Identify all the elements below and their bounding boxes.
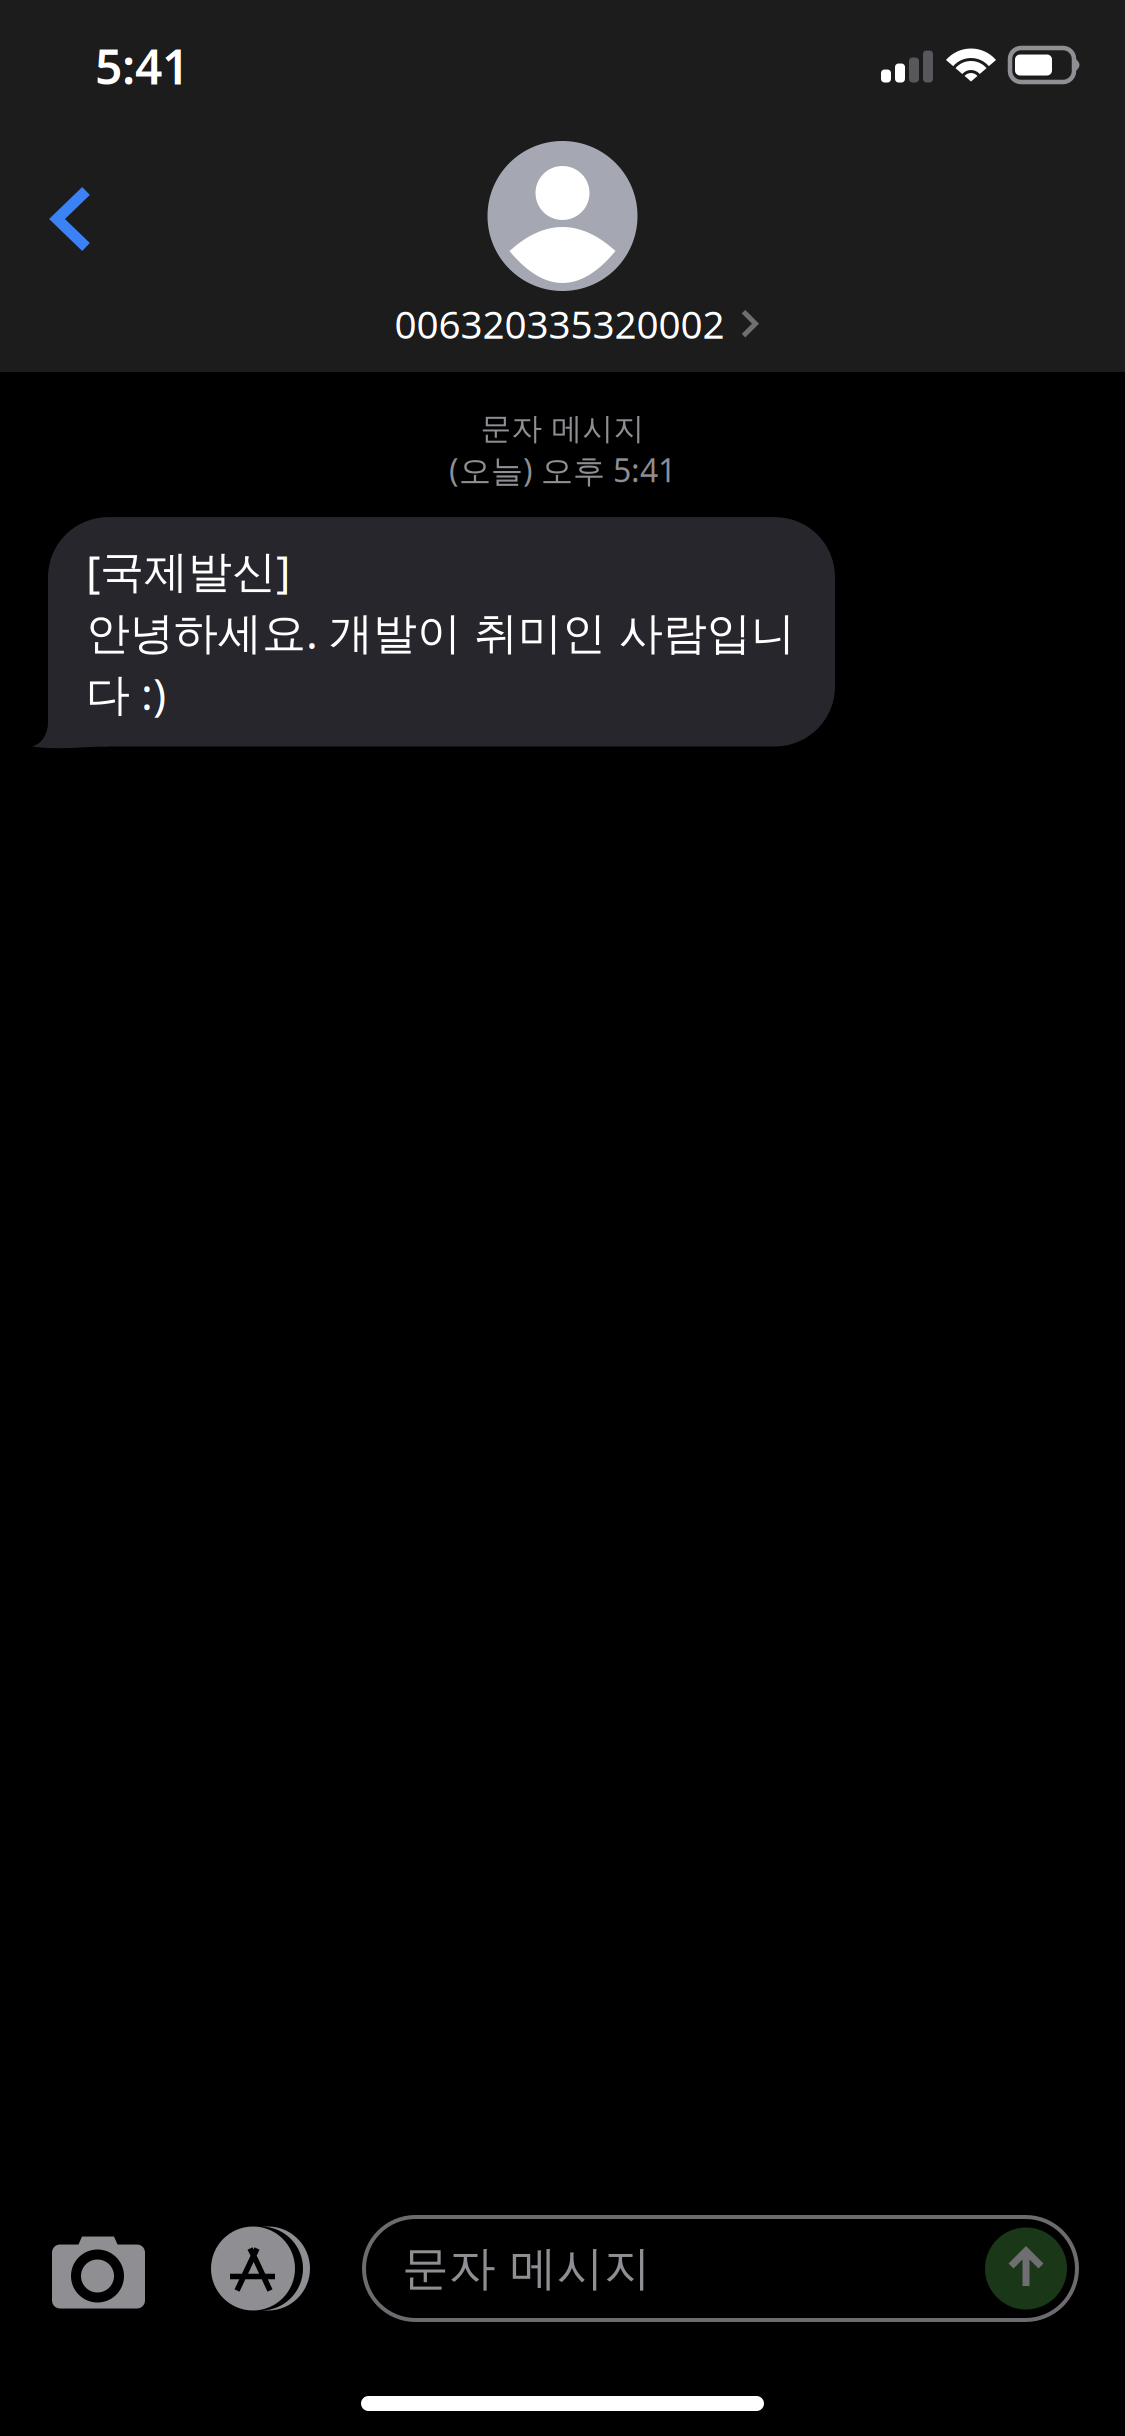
button[interactable]: 006320335320002 bbox=[366, 292, 758, 355]
staticText: 문자 메시지 bbox=[480, 410, 644, 448]
staticText: 006320335320002 bbox=[394, 298, 724, 349]
staticText: 5:41 bbox=[95, 34, 189, 98]
staticText: [국제발신] 안녕하세요. 개발이 취미인 사람입니 다 :) bbox=[86, 541, 795, 722]
button[interactable]: Camera bbox=[52, 2228, 145, 2308]
staticText: 문자 메시지 bbox=[402, 2240, 651, 2297]
button[interactable]: 문자 메시지 bbox=[364, 2217, 1077, 2320]
button[interactable]: Home indicator bbox=[361, 2396, 764, 2411]
button[interactable]: App Store bbox=[204, 2226, 304, 2310]
staticText: (오늘) 오후 5:41 bbox=[449, 449, 676, 491]
button[interactable]: Back bbox=[0, 164, 118, 274]
